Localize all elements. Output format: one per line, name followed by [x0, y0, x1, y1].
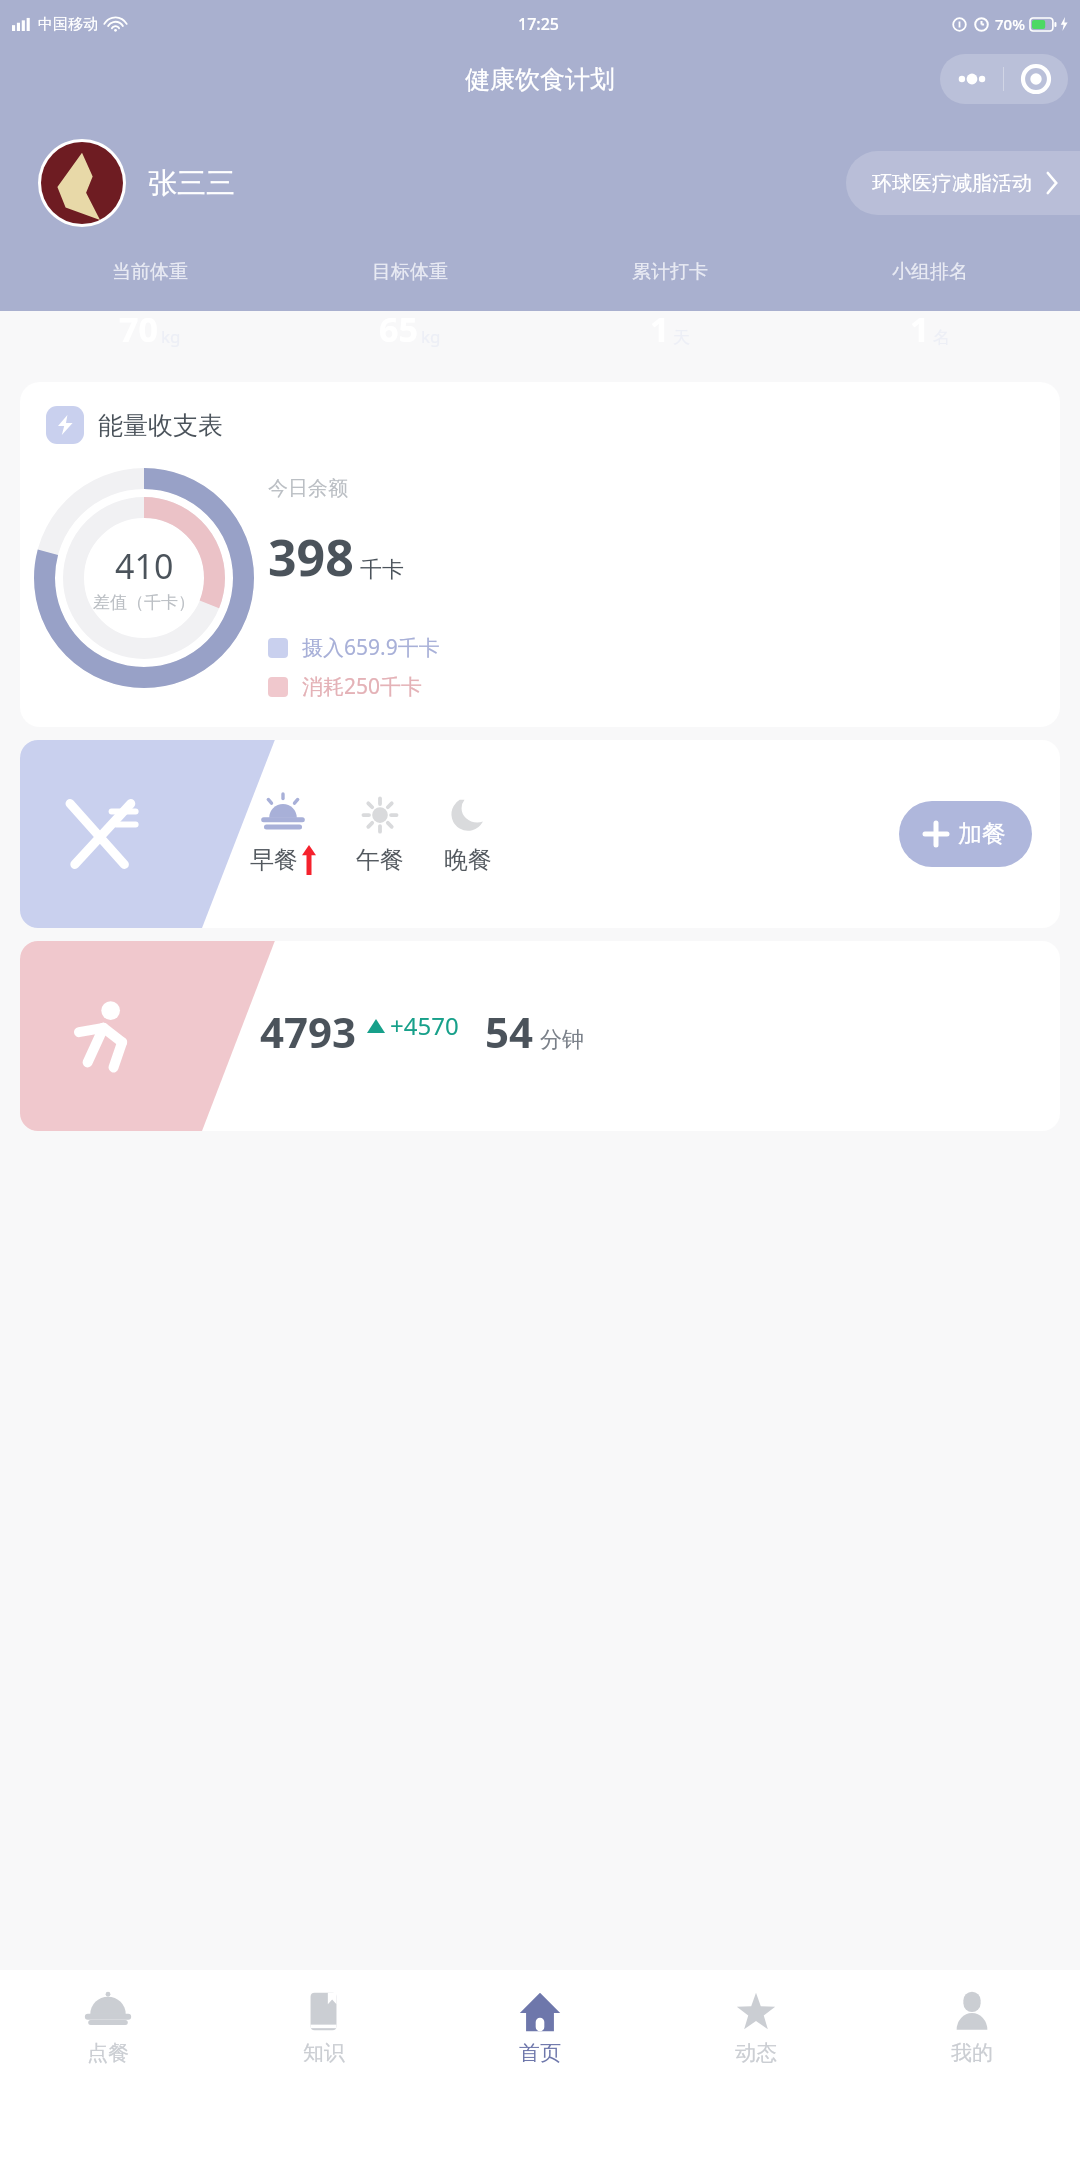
button[interactable]: Avatar — [41, 142, 123, 224]
staticText: 398 — [268, 523, 354, 591]
staticText: 早餐 — [250, 845, 298, 875]
button[interactable]: 动态 — [648, 1988, 864, 2066]
staticText: 名 — [933, 327, 950, 348]
staticText: 70% — [995, 14, 1025, 34]
staticText: 环球医疗减脂活动 — [872, 171, 1032, 196]
button[interactable]: 早餐 — [20, 740, 1060, 928]
button[interactable]: 晚餐 — [444, 793, 492, 875]
button[interactable]: 加餐 — [925, 801, 1006, 867]
staticText: 1 — [650, 306, 670, 352]
button[interactable]: 小组排名 — [800, 260, 1060, 352]
button[interactable]: 首页 — [432, 1988, 648, 2066]
staticText: 54 — [485, 1003, 534, 1060]
button[interactable]: 午餐 — [356, 793, 404, 875]
staticText: 我的 — [951, 2040, 993, 2066]
staticText: kg — [161, 325, 181, 348]
button[interactable]: 当前体重 — [20, 260, 280, 352]
staticText: 千卡 — [360, 556, 404, 584]
staticText: 4793 — [260, 1003, 357, 1060]
button[interactable]: Target — [1004, 54, 1068, 104]
button[interactable]: 知识 — [216, 1988, 432, 2066]
button[interactable]: 我的 — [864, 1988, 1080, 2066]
button[interactable]: 环球医疗减脂活动 — [872, 151, 1058, 215]
button[interactable]: 能量收支表 — [20, 382, 1060, 727]
staticText: kg — [421, 325, 441, 348]
staticText: 动态 — [735, 2040, 777, 2066]
button[interactable]: 点餐 — [0, 1988, 216, 2066]
button[interactable]: 目标体重 — [280, 260, 540, 352]
staticText: 70 — [119, 306, 158, 352]
staticText: 张三三 — [148, 165, 235, 202]
staticText: 65 — [379, 306, 418, 352]
staticText: 目标体重 — [372, 260, 448, 284]
staticText: 分钟 — [540, 1026, 584, 1054]
button[interactable]: 早餐 — [250, 793, 316, 875]
staticText: 晚餐 — [444, 845, 492, 875]
staticText: 1 — [910, 306, 930, 352]
staticText: 当前体重 — [112, 260, 188, 284]
button[interactable]: More options — [940, 54, 1003, 104]
staticText: 累计打卡 — [632, 260, 708, 284]
staticText: 点餐 — [87, 2040, 129, 2066]
staticText: 知识 — [303, 2040, 345, 2066]
staticText: 17:25 — [518, 13, 559, 35]
staticText: 午餐 — [356, 845, 404, 875]
staticText: 加餐 — [958, 819, 1006, 849]
staticText: 健康饮食计划 — [465, 64, 615, 95]
staticText: 小组排名 — [892, 260, 968, 284]
staticText: 消耗250千卡 — [302, 672, 423, 701]
staticText: 差值（千卡） — [93, 592, 195, 613]
staticText: 能量收支表 — [98, 410, 223, 441]
button[interactable]: 累计打卡 — [540, 260, 800, 352]
staticText: 中国移动 — [38, 15, 98, 34]
button[interactable]: 4793 — [20, 941, 1060, 1131]
staticText: 摄入659.9千卡 — [302, 633, 440, 662]
staticText: +4570 — [390, 1009, 459, 1042]
staticText: 天 — [673, 327, 690, 348]
staticText: 今日余额 — [268, 476, 348, 501]
staticText: 首页 — [519, 2040, 561, 2066]
staticText: 410 — [115, 543, 174, 589]
